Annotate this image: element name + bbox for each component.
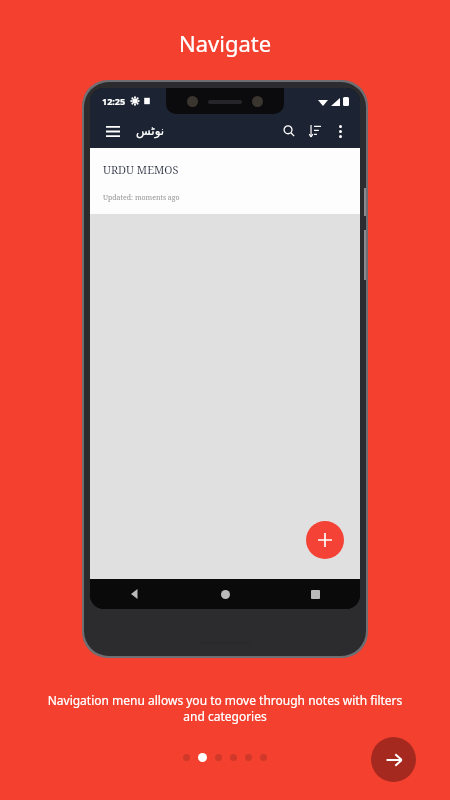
button[interactable]: Open navigation menu	[100, 118, 126, 144]
staticText: Navigation menu allows you to move throu…	[40, 692, 410, 724]
button[interactable]: Add note	[306, 521, 344, 559]
staticText: Navigate	[179, 28, 272, 58]
button[interactable]	[260, 754, 267, 761]
button[interactable]: URDU MEMOS	[90, 148, 360, 214]
staticText: Updated: moments ago	[103, 193, 180, 203]
button[interactable]: More options	[328, 119, 352, 143]
button[interactable]	[183, 754, 190, 761]
button[interactable]: Recent apps	[270, 579, 360, 609]
button[interactable]: Sort	[302, 118, 328, 144]
button[interactable]: Home	[180, 579, 270, 609]
button[interactable]	[245, 754, 252, 761]
button[interactable]: Next	[371, 737, 416, 782]
staticText: 12:25	[102, 95, 126, 107]
staticText: URDU MEMOS	[103, 162, 179, 177]
button[interactable]: Search	[276, 118, 302, 144]
button[interactable]	[230, 754, 237, 761]
button[interactable]	[215, 754, 222, 761]
button[interactable]: Back	[90, 579, 180, 609]
button[interactable]	[198, 753, 207, 762]
staticText: نوٹس	[136, 124, 165, 138]
